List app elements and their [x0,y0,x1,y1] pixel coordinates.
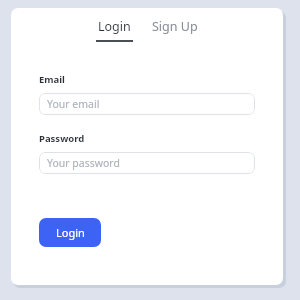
staticText: Login [98,18,131,35]
staticText: Sign Up [152,18,198,35]
staticText: Email [39,73,65,86]
button[interactable]: Login [92,16,137,44]
staticText: Login [56,225,85,240]
staticText: Password [39,132,85,145]
button[interactable]: Your password [39,152,255,174]
staticText: Your password [47,156,120,170]
button[interactable]: Login [39,218,101,247]
button[interactable]: Your email [39,93,255,115]
button[interactable]: Sign Up [148,16,202,37]
staticText: Your email [47,97,100,111]
